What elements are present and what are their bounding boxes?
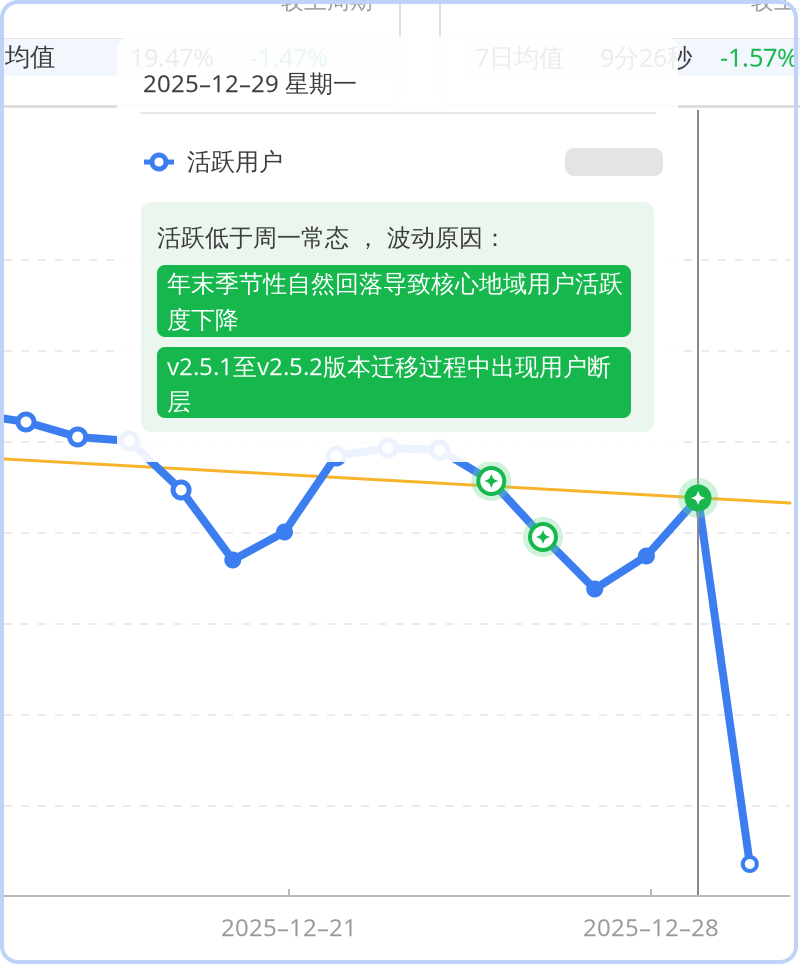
staticText: 较上周期: [281, 0, 373, 15]
staticText: 2025–12–21: [221, 911, 357, 943]
staticText: 2025–12–29 星期一: [143, 67, 357, 99]
staticText: 2025–12–28: [583, 911, 719, 943]
staticText: v2.5.1至v2.5.2版本迁移过程中出现用户断: [167, 350, 611, 382]
staticText: 年末季节性自然回落导致核心地域用户活跃: [167, 269, 623, 299]
staticText: 19.47%: [130, 40, 214, 74]
staticText: 较上周期: [751, 0, 800, 15]
staticText: 度下降: [167, 305, 239, 335]
button[interactable]: 较上周期: [0, 0, 400, 106]
staticText: -1.47%: [250, 40, 328, 74]
staticText: 9分26秒: [600, 40, 692, 74]
staticText: 均值: [5, 41, 55, 72]
staticText: -1.57%: [720, 40, 798, 74]
staticText: 7日均值: [475, 40, 564, 74]
staticText: 活跃用户: [187, 147, 283, 177]
staticText: 活跃低于周一常态 ， 波动原因：: [157, 223, 507, 253]
staticText: 层: [167, 387, 191, 417]
button[interactable]: 较上周期: [440, 0, 800, 106]
